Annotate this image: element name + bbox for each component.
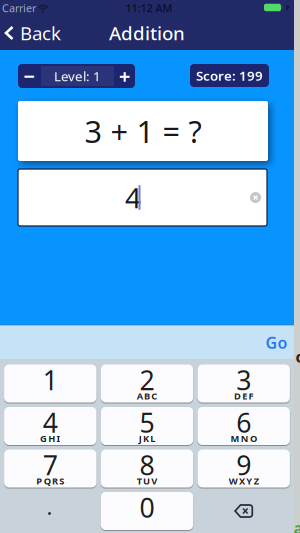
button[interactable]: 8: [101, 449, 193, 487]
staticText: Score: 199: [196, 67, 263, 84]
staticText: 6: [236, 405, 251, 440]
staticText: 3: [236, 362, 251, 398]
staticText: 0: [139, 490, 154, 525]
button[interactable]: 2: [101, 364, 193, 402]
staticText: ABC: [137, 390, 157, 402]
button[interactable]: 3: [197, 364, 290, 402]
staticText: 4: [125, 179, 141, 216]
button[interactable]: Clear text: [250, 192, 261, 203]
button[interactable]: Increase level: [114, 64, 135, 88]
button[interactable]: 6: [197, 407, 290, 445]
staticText: Level: 1: [54, 67, 101, 85]
button[interactable]: Delete: [198, 492, 290, 530]
staticText: TUV: [137, 475, 157, 487]
staticText: c: [295, 346, 300, 367]
staticText: PQRS: [36, 475, 64, 487]
staticText: +: [119, 63, 130, 89]
button[interactable]: 0: [101, 492, 193, 530]
button[interactable]: Back: [4, 19, 61, 47]
staticText: 9: [236, 447, 251, 483]
staticText: JKL: [139, 432, 155, 445]
staticText: 8: [139, 447, 154, 483]
staticText: Addition: [109, 21, 185, 45]
button[interactable]: 1: [4, 364, 96, 402]
button[interactable]: Decimal point: [4, 492, 96, 530]
staticText: Go: [265, 332, 287, 353]
staticText: 2: [139, 362, 154, 398]
button[interactable]: Go: [256, 325, 296, 359]
button[interactable]: 7: [4, 449, 96, 487]
button[interactable]: Answer field: [18, 169, 267, 226]
staticText: 3 + 1 = ?: [84, 111, 201, 151]
staticText: 11:12 AM: [125, 1, 172, 15]
staticText: Back: [20, 21, 61, 45]
staticText: 4: [43, 405, 58, 440]
button[interactable]: 4: [4, 407, 96, 445]
button[interactable]: 9: [197, 449, 290, 487]
staticText: DEF: [234, 390, 253, 402]
button[interactable]: Decrease level: [18, 64, 41, 88]
staticText: Carrier: [2, 1, 36, 15]
staticText: WXYZ: [229, 475, 259, 487]
staticText: GHI: [40, 432, 61, 445]
staticText: 7: [43, 447, 58, 483]
staticText: −: [23, 63, 35, 89]
staticText: 5: [139, 405, 154, 440]
staticText: MNO: [230, 432, 257, 445]
staticText: a: [293, 517, 300, 533]
staticText: 1: [43, 362, 58, 398]
button[interactable]: 5: [101, 407, 193, 445]
